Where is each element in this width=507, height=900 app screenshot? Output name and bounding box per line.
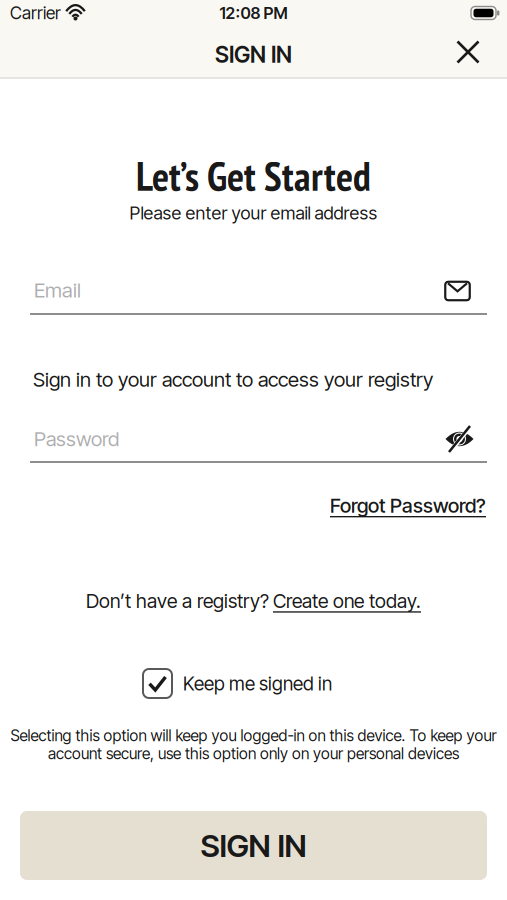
button[interactable]: Keep me signed in xyxy=(143,663,383,703)
staticText: Please enter your email address xyxy=(129,202,377,224)
staticText: Carrier xyxy=(10,2,61,23)
staticText: SIGN IN xyxy=(200,826,306,864)
staticText: Forgot Password? xyxy=(330,493,486,517)
staticText: Keep me signed in xyxy=(183,672,332,695)
staticText: Sign in to your account to access your r… xyxy=(33,367,433,392)
button[interactable]: Password xyxy=(30,414,487,464)
button[interactable]: Create one today. xyxy=(273,589,421,613)
staticText: Email xyxy=(34,278,81,302)
staticText: Selecting this option will keep you logg… xyxy=(10,726,496,745)
staticText: Password xyxy=(34,427,119,451)
staticText: 12:08 PM xyxy=(219,3,287,23)
staticText: Create one today. xyxy=(273,589,421,613)
button[interactable]: Forgot Password? xyxy=(326,489,490,521)
staticText: Let’s Get Started xyxy=(136,150,371,202)
staticText: account secure, use this option only on … xyxy=(48,744,459,763)
staticText: SIGN IN xyxy=(215,41,292,68)
button[interactable]: SIGN IN xyxy=(20,811,487,880)
button[interactable]: Email xyxy=(30,266,487,316)
button[interactable]: Close xyxy=(449,33,486,70)
staticText: Don’t have a registry? xyxy=(86,589,269,613)
